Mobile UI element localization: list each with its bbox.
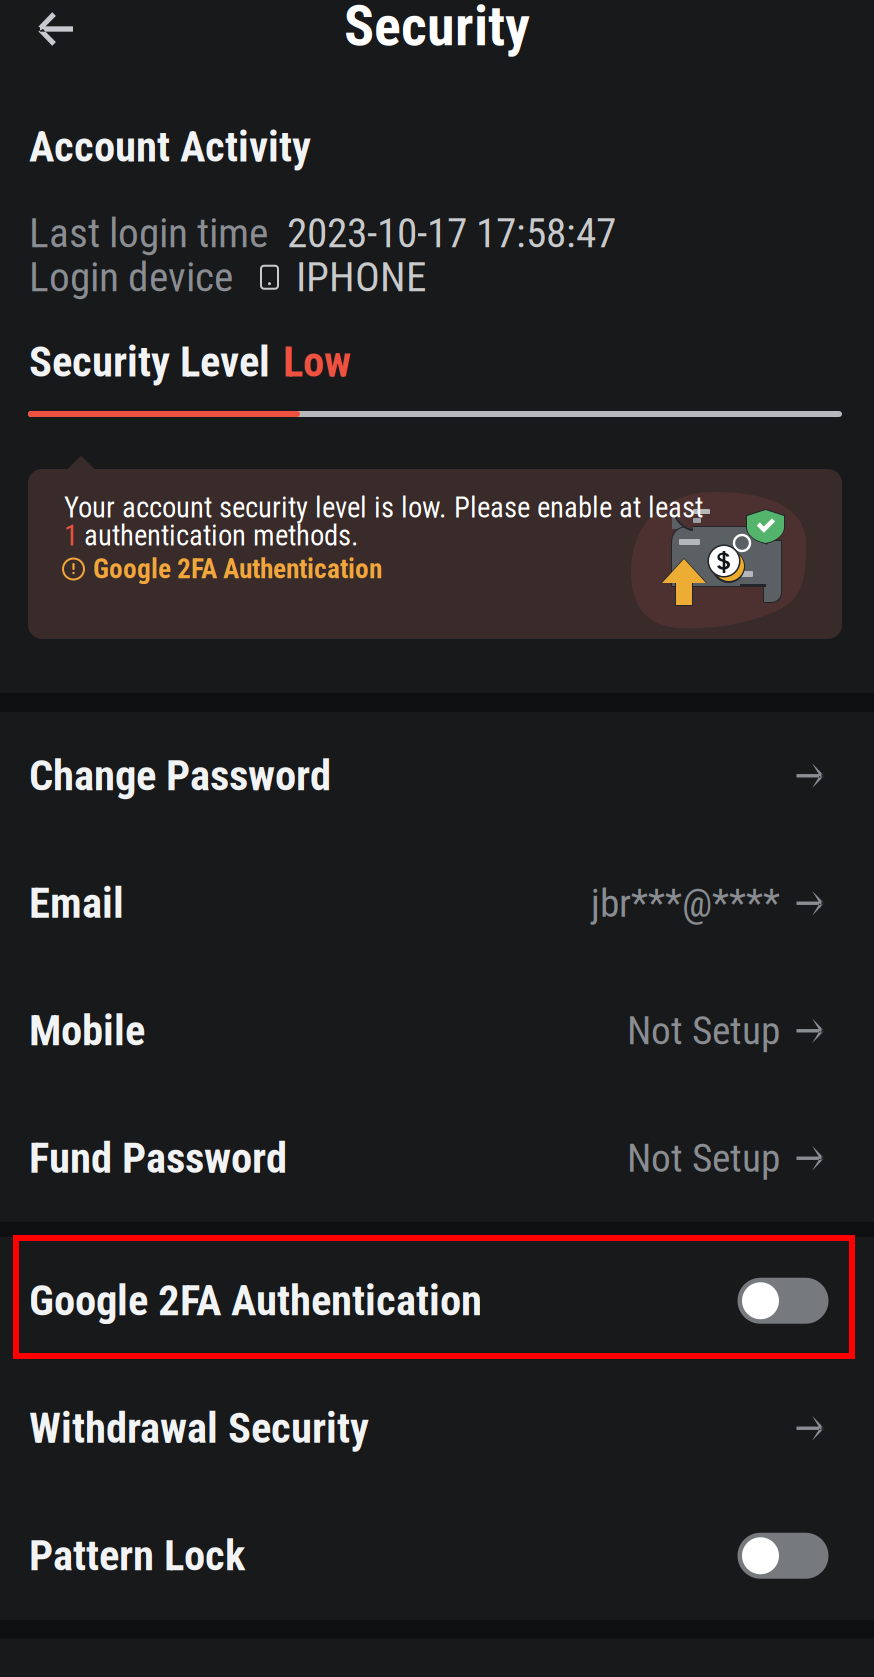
button[interactable]: Google 2FA Authentication bbox=[0, 1237, 874, 1364]
staticText: Email bbox=[29, 878, 124, 928]
button[interactable]: Mobile bbox=[0, 967, 874, 1094]
staticText: Mobile bbox=[29, 1006, 145, 1056]
staticText: Pattern Lock bbox=[29, 1531, 245, 1581]
staticText: Low bbox=[283, 337, 351, 387]
button[interactable]: Email bbox=[0, 839, 874, 967]
staticText: Login device bbox=[29, 253, 233, 301]
staticText: Security bbox=[344, 0, 530, 59]
button[interactable]: Change Password bbox=[0, 712, 874, 839]
button[interactable]: Withdrawal Security bbox=[0, 1364, 874, 1492]
staticText: Google 2FA Authentication bbox=[93, 553, 382, 585]
staticText: Not Setup bbox=[627, 1135, 780, 1181]
button[interactable]: Security bbox=[0, 2, 874, 50]
staticText: 2023-10-17 17:58:47 bbox=[287, 209, 616, 257]
staticText: Security Level bbox=[29, 337, 270, 387]
staticText: Change Password bbox=[29, 751, 331, 801]
staticText: Not Setup bbox=[627, 1008, 780, 1054]
staticText: 1 bbox=[64, 519, 78, 553]
staticText: Last login time bbox=[29, 209, 268, 257]
staticText: jbr***@**** bbox=[591, 880, 780, 926]
staticText: Withdrawal Security bbox=[29, 1403, 369, 1453]
staticText: IPHONE bbox=[296, 253, 427, 301]
button[interactable]: Pattern Lock bbox=[0, 1492, 874, 1619]
staticText: Google 2FA Authentication bbox=[29, 1276, 482, 1326]
staticText: Your account security level is low. Plea… bbox=[64, 491, 703, 525]
button[interactable]: Back bbox=[29, 3, 82, 55]
staticText: Account Activity bbox=[29, 122, 311, 172]
staticText: authentication methods. bbox=[84, 519, 359, 553]
staticText: Fund Password bbox=[29, 1133, 287, 1183]
button[interactable]: Fund Password bbox=[0, 1094, 874, 1222]
